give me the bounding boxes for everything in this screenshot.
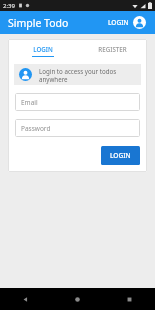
- staticText: Password: [21, 124, 51, 133]
- button[interactable]: LOGIN: [105, 13, 149, 32]
- button[interactable]: Email: [15, 93, 140, 111]
- button[interactable]: Recent apps: [103, 288, 155, 310]
- staticText: REGISTER: [98, 45, 127, 53]
- button[interactable]: Back: [0, 288, 51, 310]
- staticText: 2:39: [3, 2, 15, 10]
- staticText: Email: [21, 98, 38, 107]
- button[interactable]: LOGIN: [8, 39, 77, 59]
- button[interactable]: Password: [15, 119, 140, 137]
- button[interactable]: Home: [51, 288, 103, 310]
- button[interactable]: REGISTER: [77, 39, 147, 59]
- staticText: Simple Todo: [8, 16, 69, 30]
- staticText: LOGIN: [110, 151, 131, 160]
- staticText: Login to access your todos anywhere: [39, 67, 141, 83]
- staticText: LOGIN: [108, 18, 129, 27]
- other: Account: [133, 16, 146, 29]
- button[interactable]: LOGIN: [101, 146, 140, 165]
- staticText: LOGIN: [33, 45, 53, 53]
